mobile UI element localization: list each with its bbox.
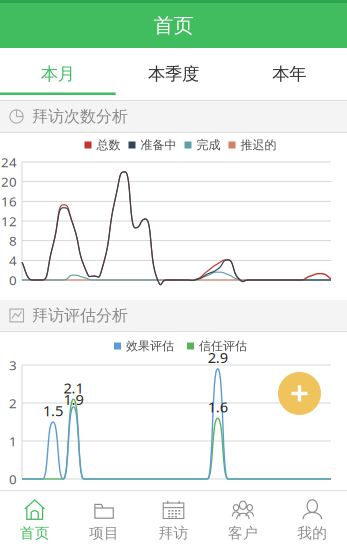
staticText: 拜访评估分析	[32, 306, 128, 325]
staticText: 24	[1, 153, 17, 171]
staticText: 拜访次数分析	[32, 107, 128, 126]
button[interactable]: 我的	[278, 491, 347, 550]
staticText: 4	[9, 251, 17, 269]
staticText: 本年	[272, 63, 306, 85]
staticText: 1.6	[208, 397, 228, 416]
staticText: 3	[9, 356, 17, 374]
staticText: 12	[1, 212, 17, 230]
staticText: 首页	[153, 13, 193, 38]
button[interactable]: 拜访	[139, 491, 208, 550]
staticText: 完成	[196, 138, 220, 152]
staticText: 1.5	[43, 401, 63, 420]
staticText: 我的	[297, 524, 327, 542]
staticText: 2	[9, 394, 17, 412]
staticText: 16	[1, 192, 17, 210]
staticText: 效果评估	[126, 339, 174, 353]
staticText: 0	[9, 271, 17, 289]
staticText: 本季度	[148, 63, 199, 85]
staticText: 总数	[96, 138, 120, 152]
staticText: 客户	[228, 524, 258, 542]
button[interactable]: 本月	[0, 48, 116, 100]
button[interactable]: 本季度	[116, 48, 231, 100]
button[interactable]: 新建	[278, 372, 321, 415]
staticText: 1.9	[63, 390, 83, 409]
staticText: 8	[9, 232, 17, 249]
staticText: 2.1	[63, 378, 83, 397]
staticText: 1	[9, 432, 17, 450]
button[interactable]: 项目	[69, 491, 139, 550]
staticText: 信任评估	[199, 339, 247, 353]
button[interactable]: 客户	[208, 491, 278, 550]
staticText: 2.9	[208, 348, 228, 367]
staticText: 推迟的	[240, 138, 276, 152]
button[interactable]: 首页	[0, 491, 69, 550]
button[interactable]: 本年	[231, 48, 347, 100]
staticText: 0	[9, 470, 17, 488]
staticText: 本月	[41, 63, 75, 85]
staticText: 首页	[20, 524, 50, 542]
staticText: 拜访	[158, 524, 188, 542]
staticText: 20	[1, 173, 17, 190]
staticText: 项目	[89, 524, 119, 542]
staticText: 准备中	[140, 138, 176, 152]
